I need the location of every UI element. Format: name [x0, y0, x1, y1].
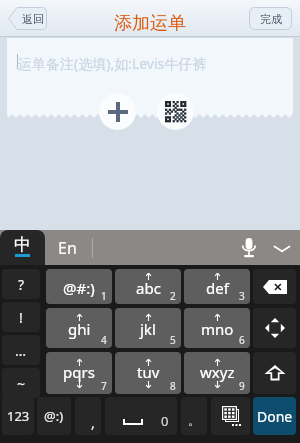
button[interactable]: Space	[105, 397, 177, 435]
button[interactable]: jkl	[115, 308, 181, 348]
button[interactable]: Scan QR code	[157, 93, 194, 130]
button[interactable]: wxyz	[184, 352, 250, 394]
staticText: 123	[7, 407, 30, 425]
button[interactable]: ~	[2, 368, 40, 398]
button[interactable]: 返回	[8, 7, 47, 30]
staticText: 4	[101, 333, 107, 347]
staticText: jkl	[140, 319, 156, 339]
button[interactable]: 完成	[249, 7, 292, 30]
staticText: ~	[17, 374, 26, 393]
staticText: wxyz	[200, 362, 235, 382]
button[interactable]: Switch keyboard	[211, 397, 250, 435]
staticText: 7	[101, 379, 107, 393]
staticText: 5	[170, 333, 176, 347]
staticText: En	[58, 237, 77, 259]
staticText: 2	[170, 289, 176, 303]
staticText: 9	[239, 379, 245, 393]
staticText: 返回	[22, 12, 44, 26]
button[interactable]: pqrs	[46, 352, 112, 394]
button[interactable]: tuv	[115, 352, 181, 394]
button[interactable]: mno	[184, 308, 250, 348]
staticText: @#:)	[63, 278, 95, 298]
button[interactable]: ghi	[46, 308, 112, 348]
staticText: 6	[239, 333, 245, 347]
staticText: …	[15, 341, 27, 360]
button[interactable]: @:)	[37, 397, 71, 435]
button[interactable]: Period	[181, 397, 207, 435]
staticText: 1	[101, 289, 107, 303]
button[interactable]: Add item	[99, 93, 136, 130]
staticText: mno	[201, 319, 234, 339]
staticText: ,	[91, 413, 95, 432]
button[interactable]: ?	[2, 269, 40, 299]
button[interactable]: 123	[2, 397, 34, 435]
staticText: pqrs	[63, 362, 95, 382]
button[interactable]: !	[2, 302, 40, 332]
staticText: 0	[161, 412, 169, 430]
button[interactable]: 中	[0, 230, 45, 265]
staticText: ghi	[68, 319, 91, 339]
button[interactable]: Done	[253, 397, 296, 435]
button[interactable]: Shift	[253, 352, 296, 394]
staticText: Done	[257, 407, 293, 426]
staticText: tuv	[137, 362, 160, 382]
button[interactable]: @#:)	[46, 269, 112, 304]
button[interactable]: Voice input	[236, 230, 262, 265]
button[interactable]: Comma	[75, 397, 101, 435]
staticText: @:)	[44, 407, 64, 425]
button[interactable]: …	[2, 335, 40, 365]
staticText: abc	[136, 278, 161, 298]
button[interactable]: abc	[115, 269, 181, 304]
button[interactable]: Move cursor	[253, 308, 296, 348]
staticText: !	[19, 308, 23, 327]
staticText: 中	[14, 234, 31, 255]
staticText: 。	[188, 413, 200, 428]
button[interactable]: Hide keyboard	[268, 230, 296, 265]
staticText: 8	[170, 379, 176, 393]
staticText: ?	[18, 275, 25, 294]
staticText: 添加运单	[114, 12, 186, 35]
staticText: 运单备注(选填),如:Levis牛仔裤	[18, 54, 207, 73]
staticText: 3	[239, 289, 245, 303]
button[interactable]: def	[184, 269, 250, 304]
staticText: def	[206, 278, 229, 298]
button[interactable]: Backspace	[253, 269, 296, 304]
staticText: 完成	[260, 12, 282, 26]
